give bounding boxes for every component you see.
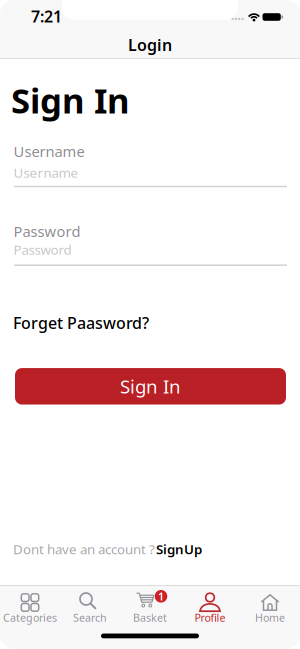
staticText: Sign In — [11, 77, 130, 123]
staticText: 7:21 — [31, 6, 62, 27]
button[interactable]: Dont have an account ? — [13, 540, 288, 558]
staticText: Search — [73, 610, 107, 625]
staticText: Basket — [133, 610, 167, 625]
button[interactable]: Password — [13, 207, 287, 273]
button[interactable]: Search — [60, 585, 120, 632]
staticText: Forget Paasword? — [13, 312, 149, 333]
staticText: Password — [13, 221, 80, 241]
staticText: Login — [128, 34, 172, 55]
staticText: Password — [13, 241, 71, 258]
button[interactable]: Username — [13, 127, 287, 193]
button[interactable]: Home — [240, 585, 300, 632]
button[interactable]: Sign In — [15, 368, 286, 405]
button[interactable]: Profile — [180, 585, 240, 632]
staticText: Home — [255, 610, 285, 625]
staticText: 1 — [158, 589, 164, 603]
button[interactable]: 1 — [120, 585, 180, 632]
staticText: SignUp — [156, 540, 202, 558]
staticText: Profile — [194, 610, 225, 625]
staticText: Categories — [3, 610, 57, 625]
button[interactable]: Categories — [0, 585, 60, 632]
staticText: Username — [13, 164, 78, 181]
staticText: Sign In — [120, 374, 181, 399]
staticText: Username — [13, 141, 84, 161]
button[interactable]: Forget Paasword? — [13, 312, 288, 333]
staticText: Dont have an account ? — [13, 540, 155, 558]
